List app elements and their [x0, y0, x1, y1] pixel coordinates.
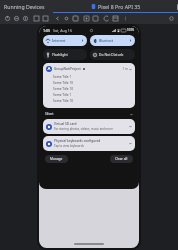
button[interactable]: Volume up [12, 14, 21, 23]
button[interactable]: Home [62, 14, 71, 23]
staticText: Silent [45, 112, 54, 116]
staticText: GroupNotiProject [54, 67, 81, 71]
staticText: Some Title 1 [53, 75, 72, 79]
button[interactable]: Record [91, 14, 100, 23]
staticText: Sat, Aug 16 [53, 28, 72, 33]
staticText: Some Title 10 [53, 99, 74, 103]
button[interactable]: Overview [71, 14, 80, 23]
button[interactable]: Panel menu [167, 14, 176, 23]
button[interactable]: Volume down [21, 14, 30, 23]
button[interactable]: Internet [43, 35, 87, 46]
staticText: Some Title 1 [53, 93, 72, 97]
staticText: Some Title 10 [53, 81, 74, 85]
staticText: 1:05 [43, 28, 51, 33]
staticText: Tap to view keyboards [54, 144, 84, 148]
button[interactable]: Flashlight [43, 49, 87, 60]
staticText: Do Not Disturb [99, 52, 124, 57]
staticText: Running Devices [4, 3, 45, 10]
button[interactable]: Clear all [110, 155, 133, 163]
staticText: For storing photos, videos, music and mo… [54, 127, 113, 131]
button[interactable]: Power [3, 14, 12, 23]
button[interactable]: Bluetooth [90, 35, 135, 46]
button[interactable]: More [121, 14, 130, 23]
button[interactable]: Pixel 8 Pro API 35 [53, 0, 178, 13]
staticText: Physical keyboards configured [54, 139, 101, 143]
staticText: Internet [52, 38, 66, 43]
button[interactable]: Manage [45, 155, 68, 163]
staticText: 100% [127, 28, 135, 32]
button[interactable]: Screenshot [82, 14, 91, 23]
staticText: Bluetooth [99, 38, 114, 43]
button[interactable]: Rotate [102, 14, 111, 23]
staticText: Flashlight [52, 52, 68, 57]
button[interactable]: GroupNotiProject [43, 63, 135, 108]
staticText: Some Title 10 [53, 87, 74, 91]
staticText: Virtual SD card [54, 122, 77, 126]
button[interactable]: Virtual SD card [43, 119, 135, 134]
button[interactable]: Do Not Disturb [90, 49, 135, 60]
staticText: Pixel 8 Pro API 35 [98, 3, 141, 10]
staticText: Manage [50, 157, 63, 161]
button[interactable]: Settings [111, 14, 120, 23]
staticText: 1 m [123, 67, 128, 71]
button[interactable]: Rotate left [32, 14, 41, 23]
staticText: Clear all [115, 157, 128, 161]
button[interactable]: Physical keyboards configured [43, 136, 135, 151]
button[interactable]: Rotate right [41, 14, 50, 23]
button[interactable]: Back [53, 14, 62, 23]
